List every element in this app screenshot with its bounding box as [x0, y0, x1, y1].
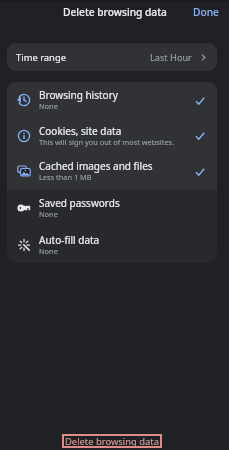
staticText: Delete browsing data [65, 435, 159, 448]
button[interactable]: Saved passwords [7, 189, 217, 226]
button[interactable]: Cached images and files [7, 153, 217, 189]
staticText: Last Hour [150, 51, 192, 64]
staticText: Auto-fill data [39, 233, 100, 247]
staticText: Cookies, site data [39, 124, 122, 138]
button[interactable]: Time range [7, 43, 217, 71]
staticText: This will sign you out of most websites. [39, 137, 175, 147]
staticText: Browsing history [39, 88, 118, 102]
staticText: Done [193, 5, 219, 19]
staticText: Saved passwords [39, 196, 120, 210]
button[interactable]: Auto-fill data [7, 226, 217, 263]
staticText: Time range [16, 51, 66, 64]
button[interactable]: Browsing history [7, 82, 217, 118]
staticText: None [39, 101, 58, 111]
staticText: Delete browsing data [63, 5, 167, 19]
button[interactable]: Cookies, site data [7, 118, 217, 153]
staticText: None [39, 246, 58, 256]
button[interactable]: Delete browsing data [62, 434, 162, 448]
button[interactable]: Done [183, 0, 229, 24]
staticText: None [39, 209, 58, 219]
staticText: Less than 1 MB [39, 172, 92, 182]
staticText: Cached images and files [39, 159, 153, 173]
